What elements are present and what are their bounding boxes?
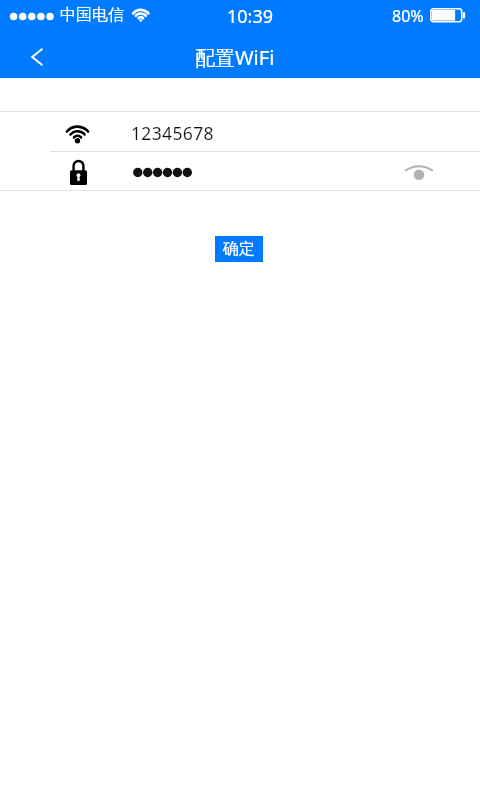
button[interactable]: Back [17,37,57,77]
staticText: 确定 [223,239,255,259]
staticText: 10:39 [227,4,274,29]
button[interactable]: Show password [0,152,480,191]
button[interactable]: 12345678 [0,112,480,151]
staticText: 中国电信 [60,5,124,25]
staticText: 12345678 [131,121,214,145]
staticText: 80% [392,5,424,27]
button[interactable]: Show password [397,152,441,191]
button[interactable]: 确定 [215,236,263,262]
staticText: 配置WiFi [195,44,275,71]
